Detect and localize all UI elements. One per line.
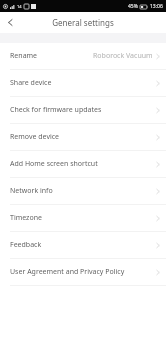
staticText: Feedback xyxy=(10,240,42,250)
staticText: Share device xyxy=(10,78,52,88)
staticText: Remove device xyxy=(10,132,60,142)
staticText: User Agreement and Privacy Policy xyxy=(10,267,125,277)
staticText: Add Home screen shortcut xyxy=(10,159,98,169)
staticText: Timezone xyxy=(10,213,42,223)
button[interactable]: Network info xyxy=(0,178,166,204)
button[interactable]: User Agreement and Privacy Policy xyxy=(0,259,166,285)
button[interactable]: Add Home screen shortcut xyxy=(0,151,166,177)
button[interactable]: Back xyxy=(0,12,21,33)
staticText: Check for firmware updates xyxy=(10,105,102,115)
staticText: 13:06 xyxy=(150,3,163,10)
button[interactable]: Rename xyxy=(0,43,166,69)
button[interactable]: Feedback xyxy=(0,232,166,258)
staticText: Roborock Vacuum xyxy=(93,51,153,61)
button[interactable]: Timezone xyxy=(0,205,166,231)
staticText: Rename xyxy=(10,51,38,61)
staticText: General settings xyxy=(52,17,114,28)
button[interactable]: Check for firmware updates xyxy=(0,97,166,123)
button[interactable]: Share device xyxy=(0,70,166,96)
staticText: 14 xyxy=(17,4,22,9)
staticText: Network info xyxy=(10,186,53,196)
button[interactable]: Remove device xyxy=(0,124,166,150)
staticText: 45% xyxy=(128,3,138,10)
